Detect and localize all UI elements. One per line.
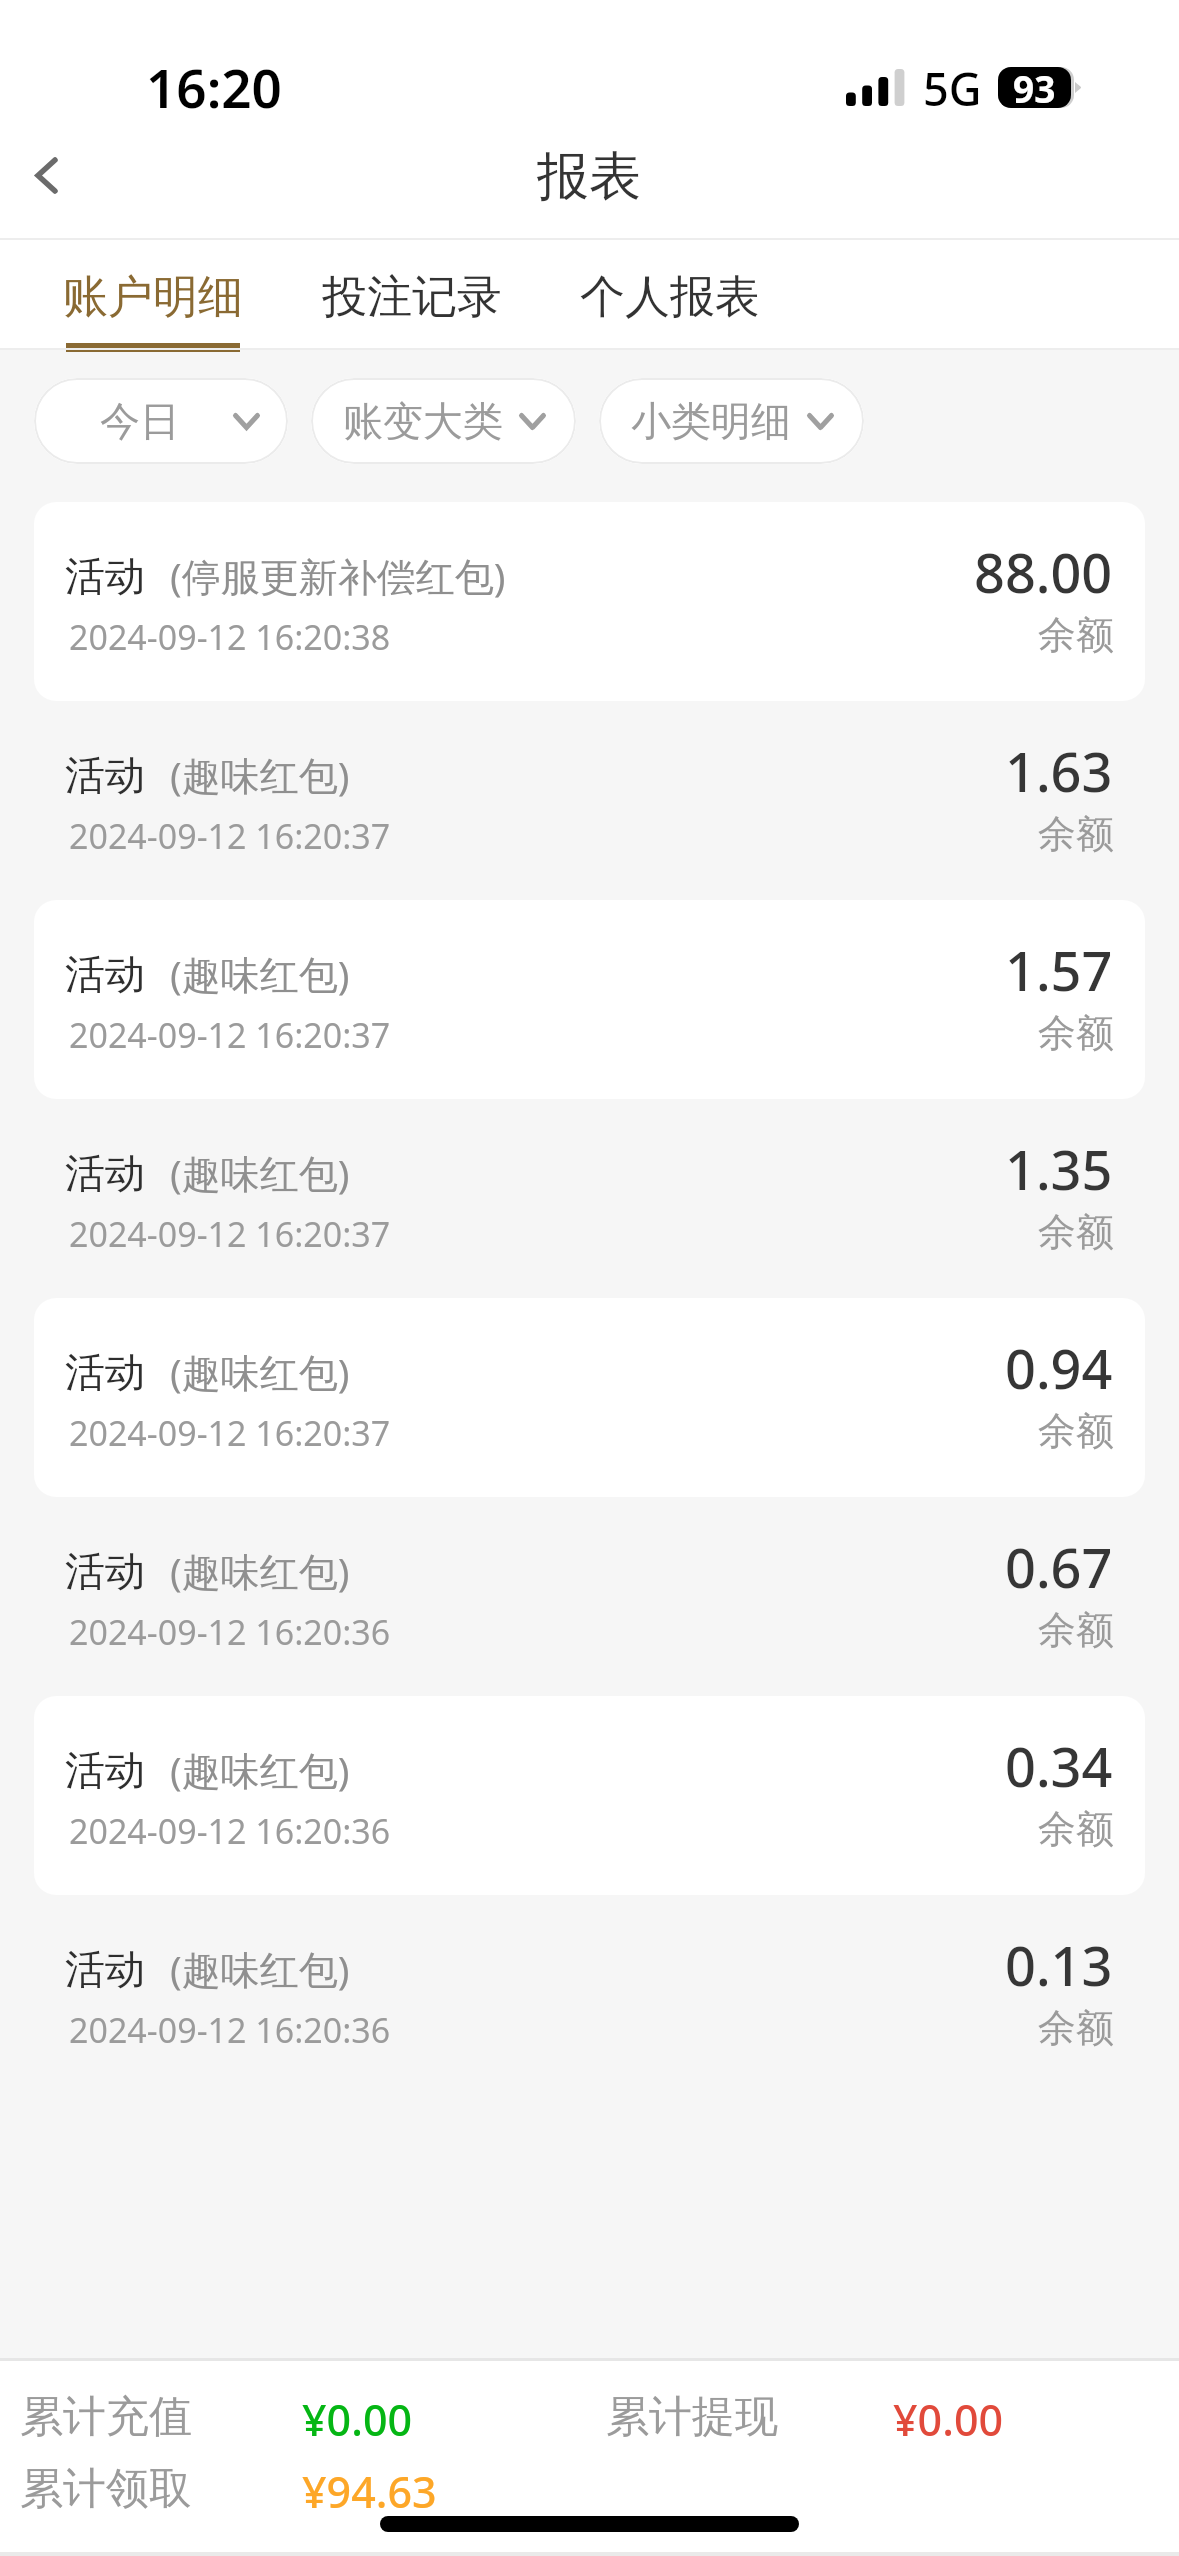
staticText: (趣味红包) — [170, 748, 350, 801]
staticText: 2024-09-12 16:20:36 — [69, 1609, 391, 1655]
button[interactable]: 活动 — [34, 1696, 1145, 1895]
staticText: 余额 — [1038, 810, 1114, 858]
staticText: 2024-09-12 16:20:37 — [69, 813, 391, 859]
staticText: 小类明细 — [631, 396, 791, 446]
staticText: 活动 — [65, 1546, 145, 1596]
staticText: 16:20 — [146, 51, 282, 123]
staticText: 93 — [1013, 67, 1056, 104]
staticText: 0.34 — [1005, 1729, 1113, 1803]
staticText: ¥0.00 — [893, 2390, 1004, 2449]
staticText: 余额 — [1038, 1208, 1114, 1256]
button[interactable]: 账变大类 — [311, 378, 576, 464]
staticText: 0.94 — [1005, 1331, 1113, 1405]
staticText: 0.67 — [1005, 1530, 1113, 1604]
staticText: ¥0.00 — [302, 2390, 413, 2449]
staticText: 活动 — [65, 949, 145, 999]
staticText: 2024-09-12 16:20:37 — [69, 1012, 391, 1058]
button[interactable]: 活动 — [34, 701, 1145, 900]
staticText: 1.35 — [1005, 1132, 1113, 1206]
button[interactable]: 小类明细 — [599, 378, 864, 464]
staticText: (趣味红包) — [170, 1544, 350, 1597]
staticText: 余额 — [1038, 1407, 1114, 1455]
button[interactable]: 活动 — [34, 900, 1145, 1099]
staticText: 2024-09-12 16:20:37 — [69, 1410, 391, 1456]
staticText: 余额 — [1038, 1606, 1114, 1654]
button[interactable]: 活动 — [34, 1497, 1145, 1696]
button[interactable]: 今日 — [34, 378, 288, 464]
button[interactable]: 投注记录 — [294, 240, 530, 350]
staticText: (停服更新补偿红包) — [170, 549, 506, 602]
staticText: (趣味红包) — [170, 1743, 350, 1796]
staticText: 5G — [923, 58, 982, 119]
staticText: ¥94.63 — [302, 2462, 437, 2521]
staticText: 2024-09-12 16:20:36 — [69, 2007, 391, 2053]
staticText: 报表 — [537, 144, 641, 210]
button[interactable]: 活动 — [34, 502, 1145, 701]
button[interactable]: Back — [5, 134, 87, 216]
staticText: 个人报表 — [580, 269, 760, 326]
staticText: 今日 — [100, 396, 180, 446]
staticText: (趣味红包) — [170, 947, 350, 1000]
button[interactable]: 账户明细 — [35, 240, 271, 350]
staticText: 2024-09-12 16:20:37 — [69, 1211, 391, 1257]
staticText: 余额 — [1038, 611, 1114, 659]
staticText: 活动 — [65, 551, 145, 601]
staticText: 累计领取 — [20, 2462, 192, 2516]
staticText: 活动 — [65, 1148, 145, 1198]
staticText: (趣味红包) — [170, 1942, 350, 1995]
button[interactable]: 活动 — [34, 1099, 1145, 1298]
staticText: 1.57 — [1005, 933, 1113, 1007]
staticText: 2024-09-12 16:20:36 — [69, 1808, 391, 1854]
staticText: 余额 — [1038, 1009, 1114, 1057]
staticText: 88.00 — [974, 535, 1113, 609]
staticText: 余额 — [1038, 2004, 1114, 2052]
staticText: 活动 — [65, 750, 145, 800]
staticText: 账变大类 — [343, 396, 503, 446]
staticText: 累计充值 — [20, 2390, 192, 2444]
button[interactable]: 活动 — [34, 1298, 1145, 1497]
staticText: 活动 — [65, 1745, 145, 1795]
staticText: 累计提现 — [606, 2390, 778, 2444]
staticText: 余额 — [1038, 1805, 1114, 1853]
staticText: (趣味红包) — [170, 1345, 350, 1398]
staticText: 1.63 — [1005, 734, 1113, 808]
staticText: 投注记录 — [322, 269, 502, 326]
staticText: 活动 — [65, 1944, 145, 1994]
button[interactable]: 活动 — [34, 1895, 1145, 2094]
staticText: 活动 — [65, 1347, 145, 1397]
button[interactable]: 个人报表 — [552, 240, 788, 350]
staticText: 2024-09-12 16:20:38 — [69, 614, 391, 660]
staticText: 0.13 — [1005, 1928, 1113, 2002]
staticText: 账户明细 — [63, 269, 243, 326]
staticText: (趣味红包) — [170, 1146, 350, 1199]
